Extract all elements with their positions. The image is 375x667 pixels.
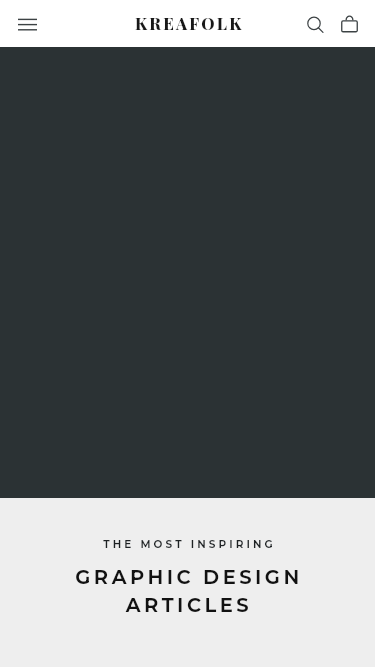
button[interactable]: Search [297, 5, 335, 43]
staticText: KREAFOLK [135, 12, 244, 34]
staticText: GRAPHIC DESIGN ARTICLES [39, 565, 339, 617]
staticText: THE MOST INSPIRING [103, 538, 276, 551]
button[interactable]: Open menu [5, 2, 49, 46]
button[interactable]: Shopping bag [330, 5, 368, 43]
